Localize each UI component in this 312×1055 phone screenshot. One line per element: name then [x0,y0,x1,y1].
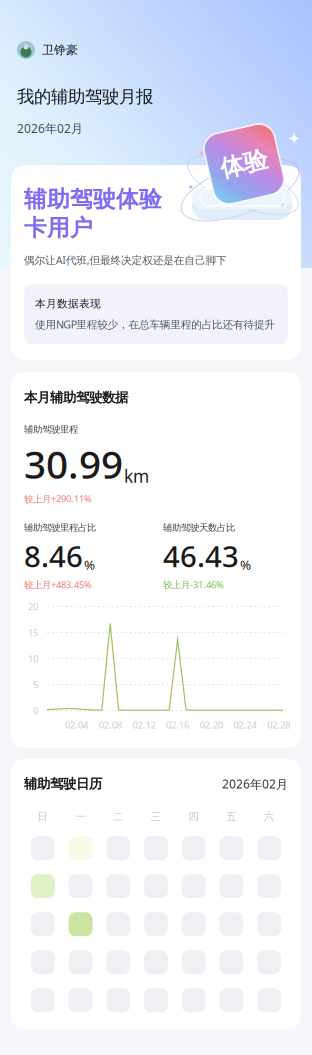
staticText: % [240,556,251,573]
staticText: 四 [188,810,199,823]
staticText: % [84,556,95,573]
staticText: 较上月+483.45% [24,578,92,591]
staticText: 02.20 [200,719,223,731]
staticText: 0 [33,704,38,717]
staticText: 30.99 [24,438,123,489]
staticText: 三 [150,810,161,823]
staticText: 较上月+290.11% [24,492,92,505]
staticText: 体验 [220,149,268,179]
staticText: 日 [37,810,48,823]
staticText: 02.28 [267,719,290,731]
staticText: 卡用户 [24,214,93,242]
staticText: 2026年02月 [222,776,288,792]
staticText: 10 [28,652,38,665]
staticText: 五 [226,810,237,823]
staticText: 本月辅助驾驶数据 [24,389,128,406]
staticText: 8.46 [24,536,83,575]
staticText: 我的辅助驾驶月报 [17,86,153,107]
staticText: 卫铮豪 [42,43,78,57]
staticText: 辅助驾驶里程 [24,424,78,435]
staticText: 02.16 [166,719,189,731]
staticText: 偶尔让AI代班,但最终决定权还是在自己脚下 [24,253,227,267]
staticText: 2026年02月 [17,120,83,136]
staticText: 02.24 [233,719,256,731]
staticText: 20 [28,600,38,613]
staticText: 六 [264,810,275,823]
staticText: 15 [28,626,38,639]
staticText: 二 [113,810,124,823]
staticText: 本月数据表现 [35,297,101,310]
staticText: 5 [33,678,38,691]
staticText: 02.04 [65,719,88,731]
staticText: 辅助驾驶里程占比 [24,522,96,533]
staticText: 较上月-31.46% [163,578,224,591]
staticText: 使用NGP里程较少，在总车辆里程的占比还有待提升 [35,317,275,331]
staticText: 辅助驾驶日历 [24,776,102,792]
staticText: 02.08 [99,719,122,731]
staticText: 辅助驾驶天数占比 [163,522,235,533]
staticText: 一 [75,810,86,823]
staticText: 02.12 [132,719,155,731]
staticText: 46.43 [163,536,239,575]
staticText: 辅助驾驶体验 [24,185,162,213]
staticText: km [124,464,149,487]
button[interactable]: 卫铮豪 [0,36,95,64]
